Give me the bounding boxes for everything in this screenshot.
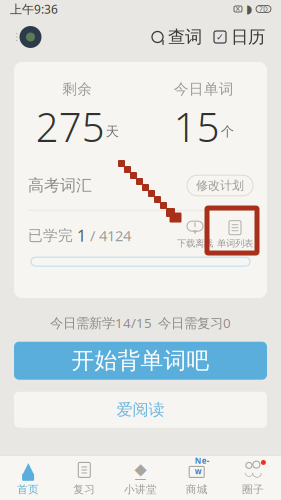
staticText: × [235, 4, 240, 14]
staticText: ◡ [244, 465, 253, 477]
button[interactable]: ▾ [177, 220, 213, 249]
button[interactable]: 查词 [146, 20, 208, 54]
button[interactable]: ▲ [0, 456, 56, 500]
staticText: 小讲堂 [124, 483, 157, 496]
staticText: 复习 [73, 483, 95, 496]
staticText: 个 [221, 123, 234, 140]
staticText: 日历 [231, 26, 265, 48]
staticText: New [195, 455, 210, 476]
button[interactable]: ✓ [208, 20, 271, 54]
button[interactable]: Profile [10, 21, 47, 53]
staticText: 7D [259, 5, 268, 13]
staticText: 查词 [168, 26, 202, 48]
staticText: 高考词汇 [28, 176, 92, 195]
staticText: 首页 [17, 483, 39, 496]
staticText: 已学完 [28, 226, 73, 244]
staticText: 修改计划 [196, 178, 244, 193]
staticText: 今日需新学14/15 今日需复习0 [50, 314, 231, 332]
staticText: ◗ [246, 2, 252, 16]
staticText: ▾ [193, 227, 197, 236]
staticText: 商城 [186, 483, 208, 496]
staticText: 开始背单词吧 [71, 347, 209, 375]
staticText: 单词列表 [217, 238, 253, 249]
staticText: 上午9:36 [10, 1, 58, 17]
button[interactable]: 复习 [56, 456, 112, 500]
staticText: / 4124 [90, 226, 131, 245]
button[interactable]: ◆ [112, 456, 169, 500]
staticText: 剩余 [62, 80, 92, 98]
staticText: 圈子 [242, 483, 264, 496]
button[interactable]: ◡ [225, 456, 281, 500]
staticText: ✓ [216, 32, 224, 42]
staticText: 275 [36, 100, 105, 153]
staticText: ◡ [251, 465, 261, 479]
staticText: ▲ [23, 459, 34, 476]
button[interactable]: 修改计划 [187, 175, 253, 196]
staticText: 天 [106, 123, 119, 140]
button[interactable]: 爱阅读 [14, 392, 267, 428]
staticText: 爱阅读 [116, 400, 164, 420]
button[interactable]: 开始背单词吧 [14, 342, 267, 380]
button[interactable]: New [169, 456, 225, 500]
staticText: 1 [77, 225, 86, 246]
staticText: 今日单词 [174, 80, 234, 98]
button[interactable]: 单词列表 [217, 220, 253, 249]
staticText: ◆ [134, 460, 146, 478]
staticText: 下载离线 [177, 238, 213, 249]
staticText: 15 [174, 100, 220, 153]
